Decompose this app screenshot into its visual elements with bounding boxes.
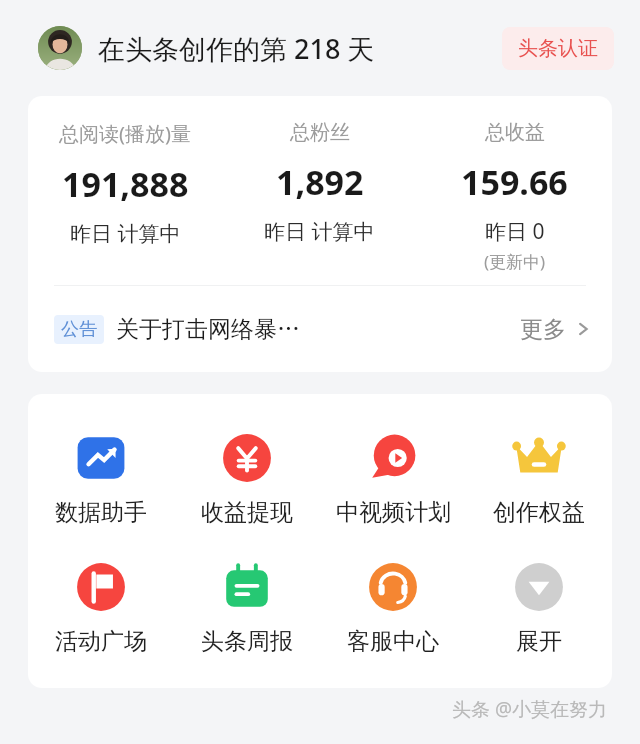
button[interactable]: 总粉丝	[222, 120, 417, 246]
staticText: 159.66	[461, 159, 568, 205]
staticText: 头条认证	[518, 36, 598, 61]
staticText: 头条 @小莫在努力	[452, 696, 608, 722]
button[interactable]: 公告	[28, 286, 612, 372]
button[interactable]: 数据助手	[28, 428, 174, 531]
staticText: 客服中心	[347, 627, 439, 656]
button[interactable]: 头条认证	[502, 27, 614, 70]
button[interactable]: 展开	[466, 557, 612, 660]
staticText: 昨日 0	[485, 217, 545, 246]
button[interactable]: 客服中心	[320, 557, 466, 660]
button[interactable]: 总收益	[417, 120, 612, 273]
staticText: 更多	[520, 315, 566, 344]
staticText: 总粉丝	[290, 120, 350, 145]
staticText: 总阅读(播放)量	[59, 120, 191, 147]
staticText: 头条周报	[201, 627, 293, 656]
button[interactable]: Profile avatar	[38, 26, 82, 70]
button[interactable]: 活动广场	[28, 557, 174, 660]
staticText: 昨日 计算中	[264, 217, 375, 246]
button[interactable]: 收益提现	[174, 428, 320, 531]
staticText: 总收益	[485, 120, 545, 145]
staticText: 1,892	[276, 159, 364, 205]
button[interactable]: 创作权益	[466, 428, 612, 531]
staticText: 公告	[61, 318, 97, 341]
staticText: 创作权益	[493, 498, 585, 527]
button[interactable]: 头条周报	[174, 557, 320, 660]
staticText: 中视频计划	[336, 498, 451, 527]
staticText: 活动广场	[55, 627, 147, 656]
staticText: 在头条创作的第 218 天	[98, 30, 375, 67]
button[interactable]: 总阅读(播放)量	[28, 120, 222, 248]
staticText: 191,888	[62, 161, 189, 207]
staticText: (更新中)	[484, 250, 546, 273]
staticText: 昨日 计算中	[70, 219, 181, 248]
staticText: 展开	[516, 627, 562, 656]
button[interactable]: 中视频计划	[320, 428, 466, 531]
staticText: 数据助手	[55, 498, 147, 527]
staticText: 关于打击网络暴力言论的…	[116, 315, 318, 344]
staticText: 收益提现	[201, 498, 293, 527]
